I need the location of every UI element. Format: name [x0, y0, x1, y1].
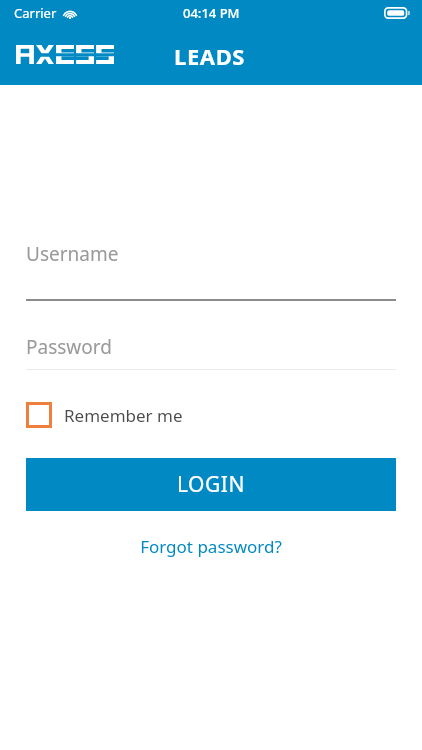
staticText: LOGIN — [177, 470, 245, 499]
staticText: Username — [26, 241, 119, 267]
staticText: 04:14 PM — [183, 4, 240, 22]
button[interactable]: Forgot password? — [26, 531, 396, 561]
button[interactable]: LOGIN — [26, 458, 396, 511]
button[interactable]: Password — [26, 334, 396, 369]
other: Axess logo — [16, 45, 114, 64]
button[interactable]: Remember me — [26, 402, 183, 428]
button[interactable]: Username — [26, 241, 396, 299]
staticText: Forgot password? — [140, 535, 282, 558]
staticText: LEADS — [174, 41, 246, 71]
staticText: Password — [26, 334, 112, 360]
staticText: Remember me — [64, 404, 183, 427]
staticText: Carrier — [14, 4, 57, 22]
